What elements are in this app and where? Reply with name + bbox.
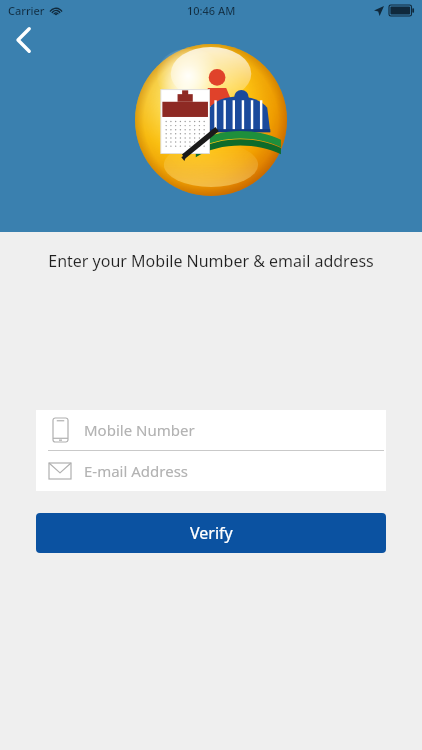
staticText: Enter your Mobile Number & email address xyxy=(48,250,374,272)
button[interactable]: E-mail Address xyxy=(36,451,386,491)
button[interactable]: Verify xyxy=(36,513,386,553)
staticText: 10:46 AM xyxy=(187,3,236,18)
staticText: E-mail Address xyxy=(84,461,189,481)
button[interactable]: Back xyxy=(6,20,46,60)
staticText: Carrier xyxy=(8,3,45,18)
staticText: Verify xyxy=(190,522,233,544)
staticText: Mobile Number xyxy=(84,420,195,440)
button[interactable]: Mobile Number xyxy=(36,410,386,450)
